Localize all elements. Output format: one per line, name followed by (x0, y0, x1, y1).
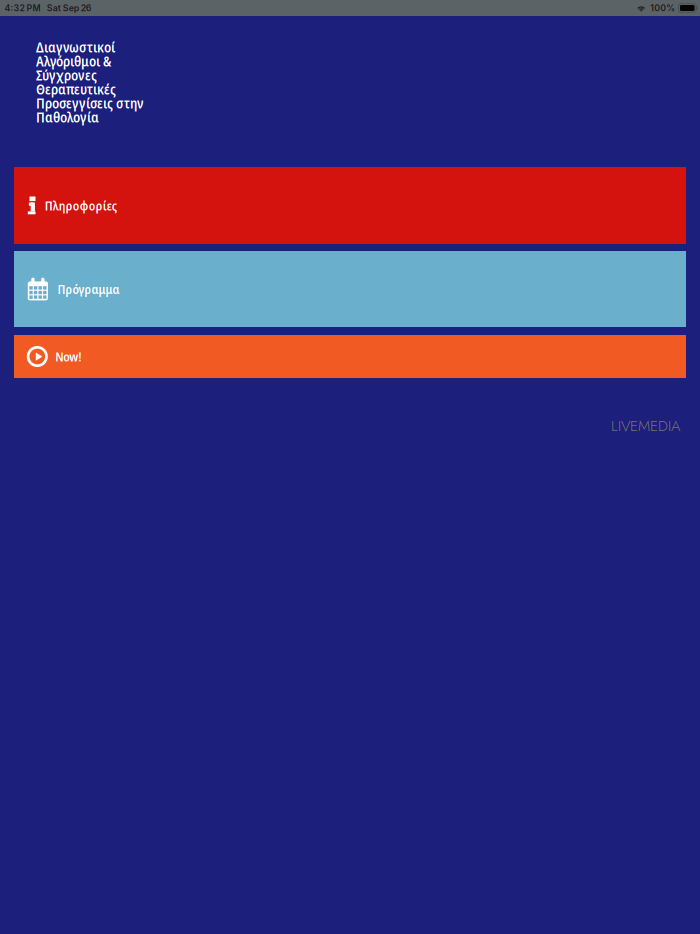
button[interactable]: Πρόγραμμα (14, 251, 686, 327)
staticText: 4:32 PM (5, 3, 41, 13)
staticText: Θεραπευτικές (36, 79, 116, 99)
staticText: Σύγχρονες (36, 65, 97, 85)
staticText: Now! (55, 348, 81, 365)
staticText: Sat Sep 26 (47, 3, 92, 13)
staticText: Παθολογία (36, 107, 99, 127)
button[interactable]: Πληροφορίες (14, 167, 686, 244)
staticText: 100% (650, 3, 675, 13)
staticText: Αλγόριθμοι & (36, 51, 111, 71)
staticText: Προσεγγίσεις στην (36, 93, 144, 113)
staticText: LIVEMEDIA (611, 415, 680, 437)
staticText: Διαγνωστικοί (36, 37, 115, 57)
button[interactable]: Now! (14, 335, 686, 378)
staticText: Πρόγραμμα (57, 280, 119, 298)
staticText: Πληροφορίες (45, 197, 117, 214)
